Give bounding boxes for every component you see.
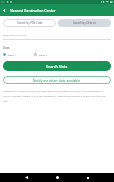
staticText: Disclaimer : We're not sure how many bed… xyxy=(3,89,111,103)
button[interactable]: Search by District xyxy=(58,19,111,27)
staticText: Search by PIN Code xyxy=(17,21,43,25)
staticText: Dose xyxy=(3,46,10,50)
button[interactable]: Recent apps xyxy=(83,173,92,182)
button[interactable]: Notify me when slots available xyxy=(3,76,111,84)
button[interactable]: Search Slots xyxy=(3,61,111,71)
staticText: Search Slots xyxy=(46,64,68,69)
staticText: Nearest Vaccination Center xyxy=(10,8,56,13)
button[interactable]: Home xyxy=(53,173,62,182)
staticText: Dose 1 xyxy=(8,53,17,56)
staticText: Dose 2 xyxy=(39,53,48,56)
button[interactable]: Dose 2 xyxy=(34,52,48,57)
staticText: Notify me when slots available xyxy=(33,78,81,82)
staticText: Enter your PIN Code xyxy=(3,33,26,36)
button[interactable]: Search by PIN Code xyxy=(3,19,56,27)
button[interactable]: Back xyxy=(0,4,9,16)
staticText: Search by District xyxy=(73,21,96,25)
button[interactable]: Back xyxy=(22,173,31,182)
button[interactable]: Dose 1 xyxy=(3,52,17,57)
